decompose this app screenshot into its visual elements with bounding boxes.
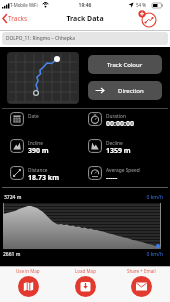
staticText: 54 % (136, 2, 147, 8)
button[interactable]: Use in Map (2, 268, 54, 297)
button[interactable] (136, 10, 160, 28)
button[interactable]: Direction (88, 81, 162, 100)
staticText: Share + Email (127, 268, 156, 274)
staticText: Track Data (0, 14, 170, 24)
staticText: Decline (106, 140, 123, 147)
button[interactable]: Share + Email (115, 268, 167, 297)
staticText: 19:46 (0, 2, 170, 9)
staticText: Distance (28, 167, 48, 174)
staticText: Average Speed (106, 167, 140, 174)
staticText: Use in Map (16, 268, 40, 274)
button[interactable]: Load Map (59, 268, 111, 297)
staticText: 18.73 km (28, 173, 59, 183)
staticText: Direction (118, 87, 144, 95)
button[interactable]: DOLPO_11: Ringmo – Chhepka (2, 32, 168, 45)
staticText: 0 km/h (0, 194, 163, 201)
staticText: Load Map (75, 268, 96, 274)
staticText: Track Colour (107, 61, 143, 69)
staticText: Incline (28, 140, 44, 147)
button[interactable]: Tracks (2, 12, 28, 24)
staticText: 2661 m (3, 251, 21, 258)
staticText: Date (28, 113, 39, 120)
staticText: Duration (106, 113, 126, 120)
staticText: DOLPO_11: Ringmo – Chhepka (6, 35, 75, 42)
staticText: 3724 m (4, 194, 22, 201)
button[interactable]: Track Colour (88, 55, 162, 74)
staticText: ----- (106, 173, 118, 183)
button[interactable] (7, 52, 79, 104)
staticText: 00:00:00 (106, 119, 134, 129)
staticText: T-Mobile WiFi (10, 2, 38, 8)
staticText: 390 m (28, 146, 49, 156)
staticText: 1359 m (106, 146, 131, 156)
staticText: Tracks (8, 14, 28, 23)
staticText: 0 km/h (0, 251, 163, 258)
